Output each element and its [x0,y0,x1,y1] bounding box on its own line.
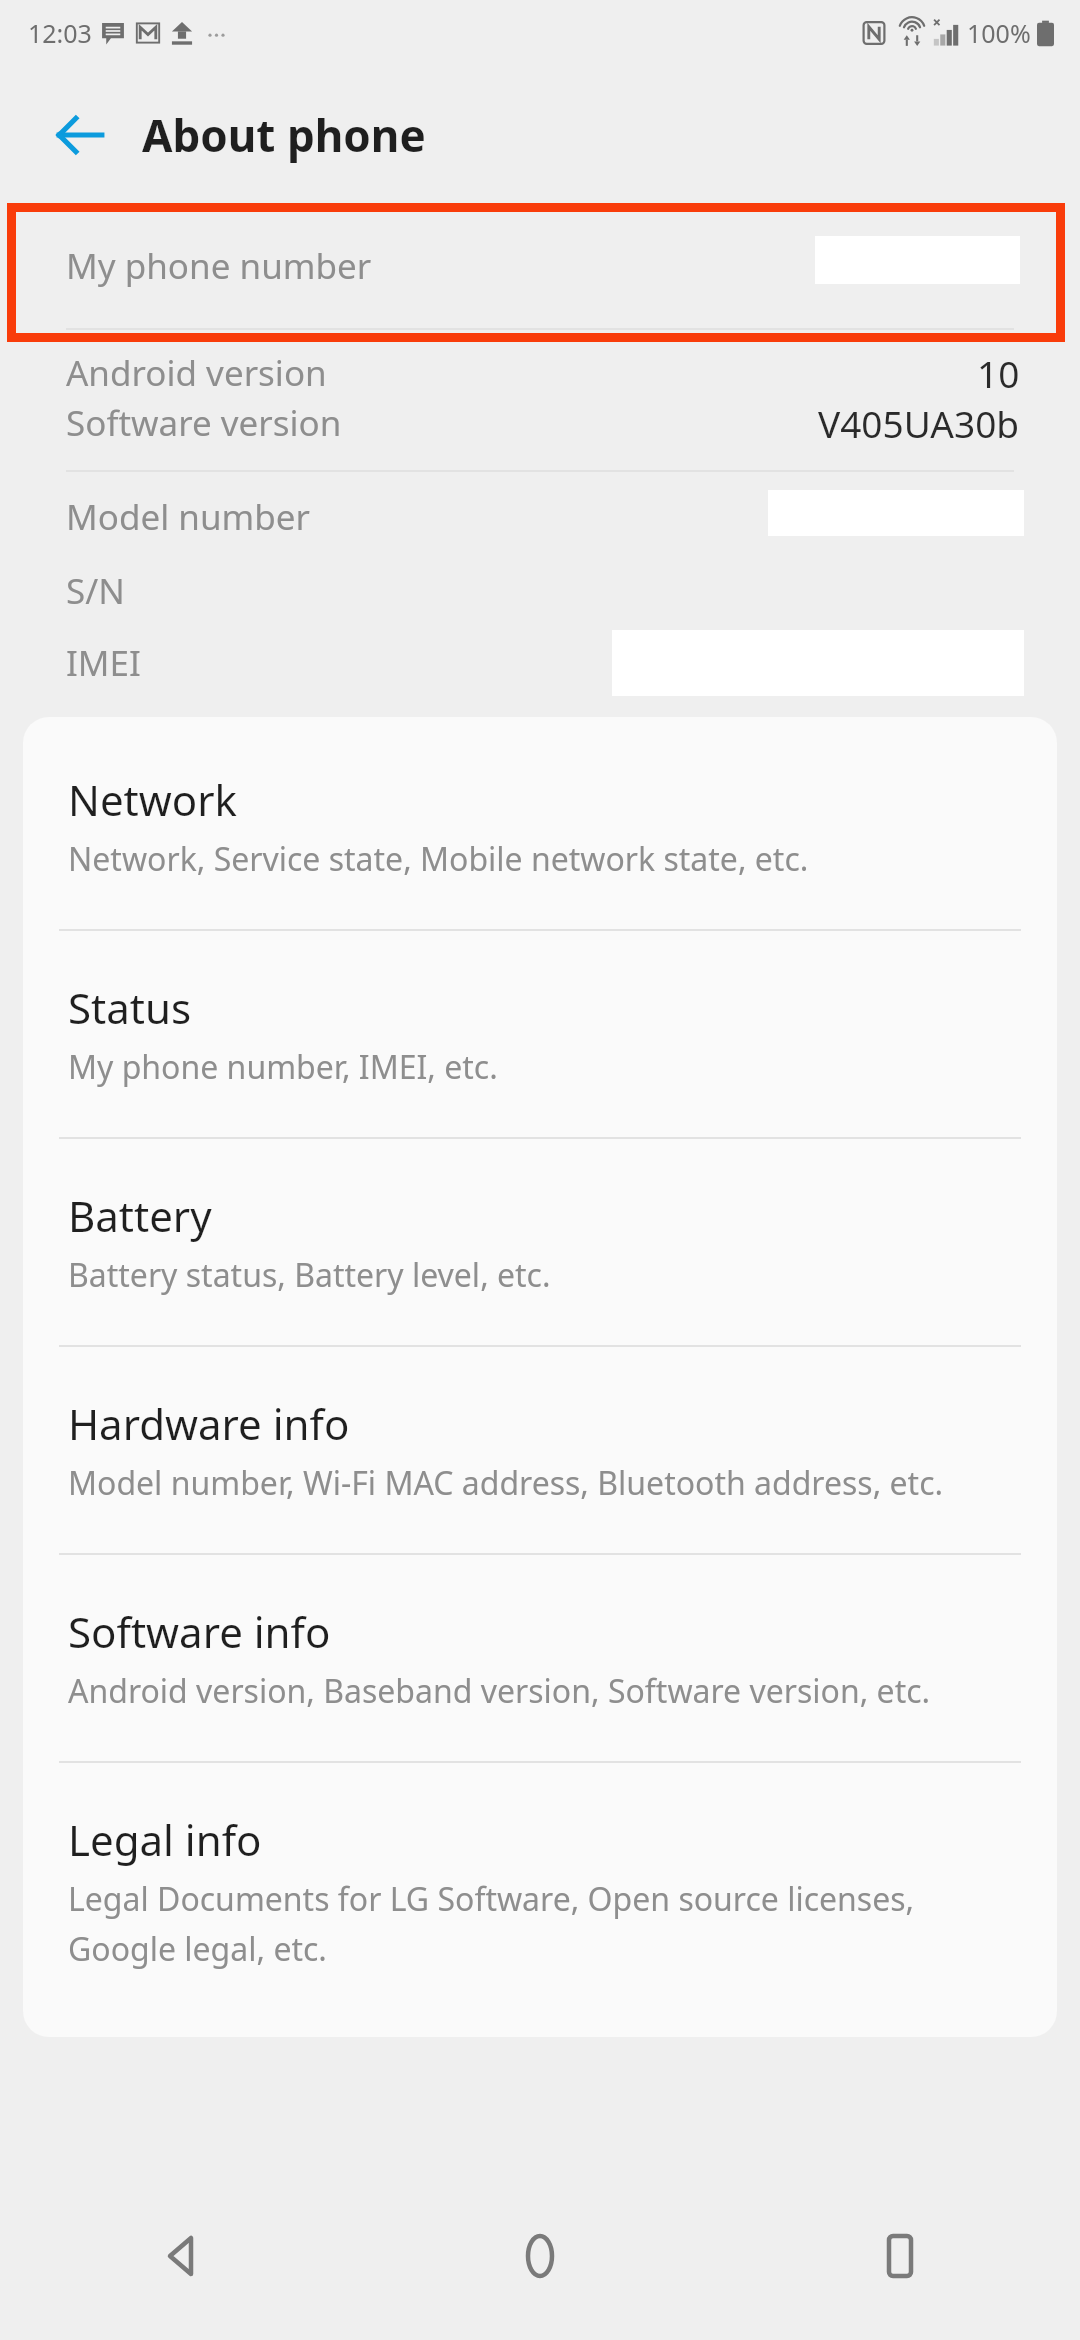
staticText: Status [68,979,192,1036]
staticText: About phone [142,105,426,165]
button[interactable]: Recent apps [720,2172,1080,2340]
staticText: 100% [967,16,1031,50]
button[interactable]: Legal info [23,1763,1057,2037]
staticText: Network, Service state, Mobile network s… [68,837,809,881]
button[interactable]: S/N [0,562,1080,620]
button[interactable]: Software version [0,398,1080,448]
staticText: V405UA30b [818,398,1020,448]
staticText: Model number [66,493,311,541]
staticText: Software version [66,399,342,447]
button[interactable]: IMEI [0,620,1080,706]
staticText: My phone number [66,242,372,290]
staticText: Legal Documents for LG Software, Open so… [68,1877,1009,1971]
staticText: Network [68,771,237,828]
button[interactable]: Status [23,931,1057,1137]
button[interactable]: Back [0,2172,360,2340]
staticText: IMEI [66,639,141,687]
button[interactable]: Network [23,717,1057,929]
staticText: Android version [66,349,327,397]
staticText: S/N [66,567,125,615]
staticText: Hardware info [68,1395,350,1452]
staticText: Battery status, Battery level, etc. [68,1253,551,1297]
staticText: Model number, Wi-Fi MAC address, Bluetoo… [68,1461,944,1505]
staticText: My phone number, IMEI, etc. [68,1045,498,1089]
staticText: 10 [977,348,1020,398]
button[interactable]: Android version [0,348,1080,398]
staticText: Android version, Baseband version, Softw… [68,1669,931,1713]
button[interactable]: Home [360,2172,720,2340]
button[interactable]: My phone number [0,203,1080,328]
button[interactable]: Battery [23,1139,1057,1345]
staticText: 12:03 [28,16,92,50]
staticText: Battery [68,1187,212,1244]
button[interactable]: Software info [23,1555,1057,1761]
button[interactable]: Back [36,91,124,179]
button[interactable]: Model number [0,472,1080,562]
staticText: Software info [68,1603,331,1660]
button[interactable]: Hardware info [23,1347,1057,1553]
staticText: Legal info [68,1811,262,1868]
